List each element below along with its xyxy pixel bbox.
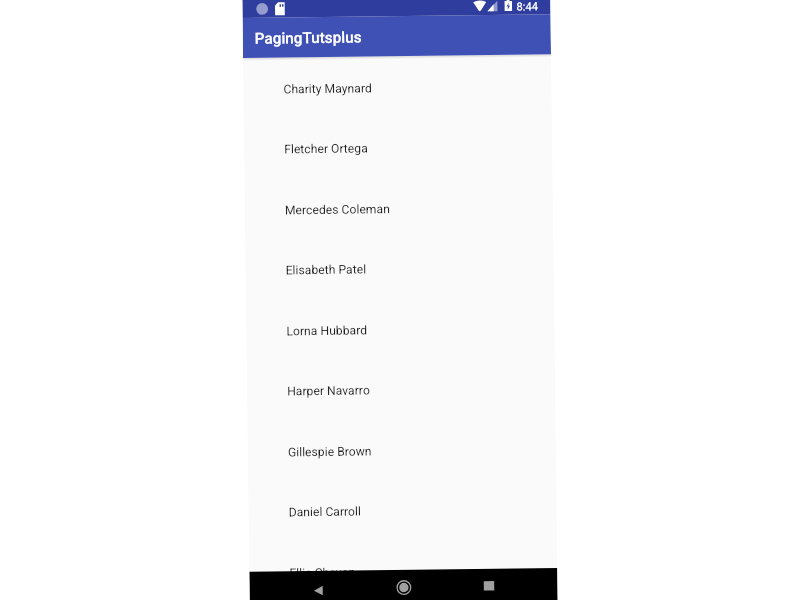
button[interactable]: Fletcher Ortega xyxy=(244,116,552,180)
button[interactable]: Home xyxy=(389,573,418,599)
button[interactable]: Back xyxy=(304,574,333,600)
staticText: Lorna Hubbard xyxy=(286,323,367,338)
staticText: Ellie Chavez xyxy=(289,566,354,580)
button[interactable]: Elisabeth Patel xyxy=(245,237,554,301)
staticText: Gillespie Brown xyxy=(288,444,372,459)
button[interactable]: Gillespie Brown xyxy=(247,419,556,483)
button[interactable]: Recent apps xyxy=(475,572,504,598)
button[interactable]: Ellie Chavez xyxy=(249,540,558,600)
staticText: PagingTutsplus xyxy=(255,28,362,48)
staticText: Charity Maynard xyxy=(283,81,372,96)
button[interactable]: Harper Navarro xyxy=(247,358,555,422)
staticText: Elisabeth Patel xyxy=(285,262,367,277)
staticText: Daniel Carroll xyxy=(288,504,362,519)
staticText: Fletcher Ortega xyxy=(284,141,368,156)
button[interactable]: Daniel Carroll xyxy=(248,479,557,543)
staticText: 8:44 xyxy=(516,0,539,14)
button[interactable]: Charity Maynard xyxy=(243,56,552,120)
staticText: Mercedes Coleman xyxy=(285,202,390,217)
button[interactable]: Mercedes Coleman xyxy=(244,177,553,241)
button[interactable]: Lorna Hubbard xyxy=(246,298,555,362)
staticText: Harper Navarro xyxy=(287,383,370,398)
